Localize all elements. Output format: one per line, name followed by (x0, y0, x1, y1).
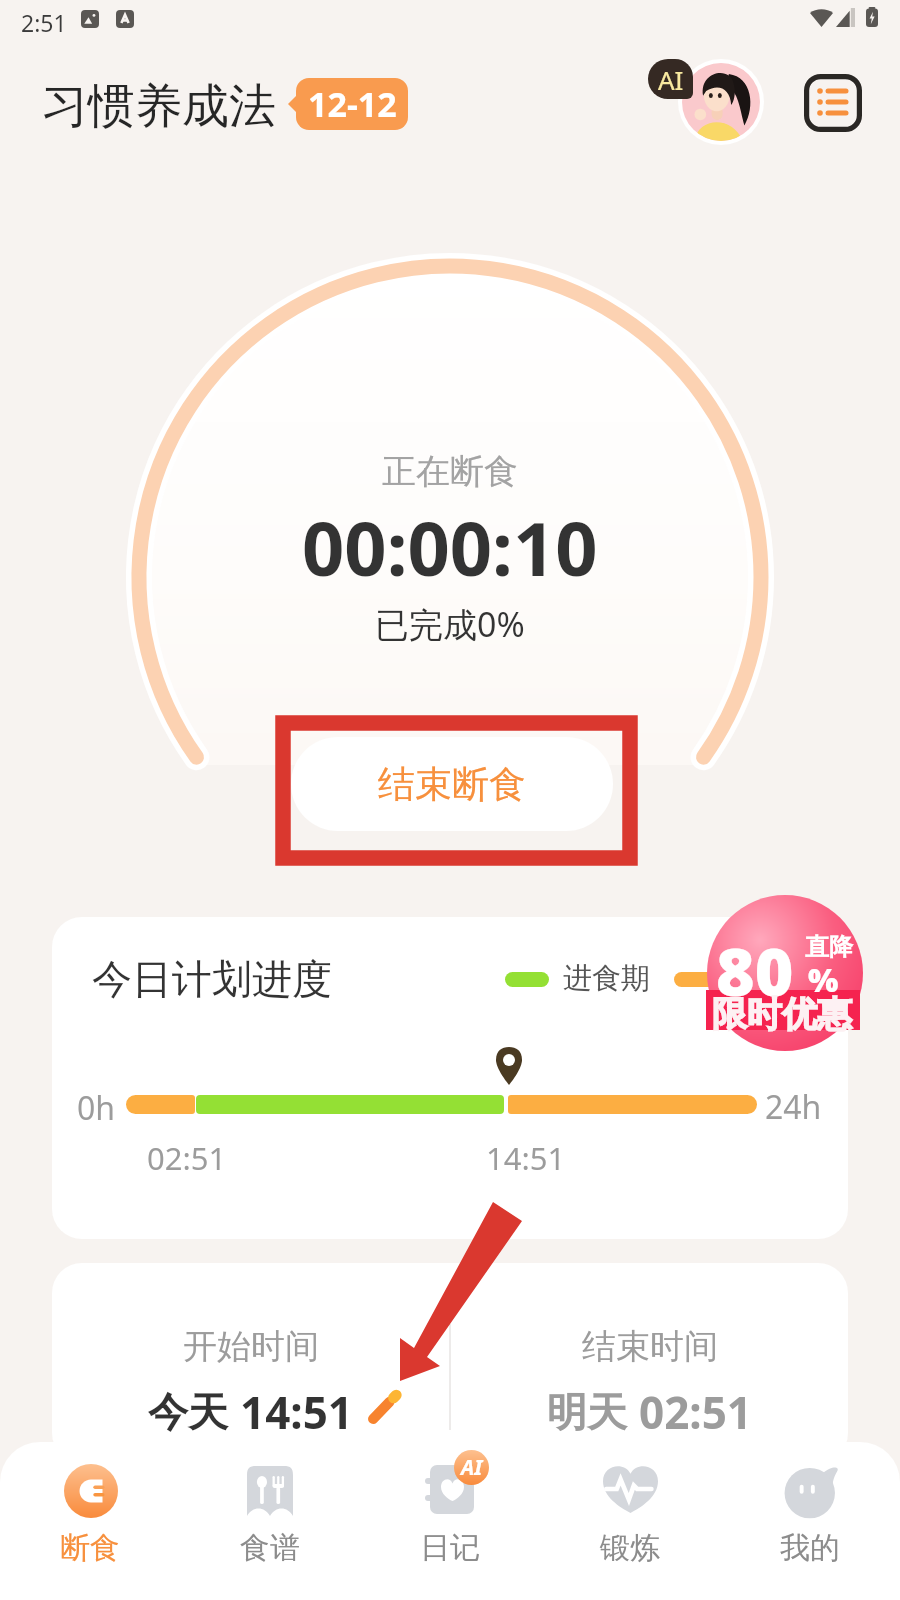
staticText: 0h (77, 1086, 116, 1130)
staticText: 习惯养成法 (41, 77, 276, 136)
staticText: 我的 (780, 1529, 840, 1567)
staticText: 14:51 (486, 1137, 566, 1179)
button[interactable]: Profile (682, 63, 760, 141)
staticText: 已完成0% (375, 601, 525, 647)
button[interactable]: 食谱 (180, 1442, 360, 1600)
staticText: 02:51 (639, 1382, 753, 1442)
staticText: 结束时间 (582, 1325, 718, 1368)
staticText: 今日计划进度 (92, 954, 332, 1004)
staticText: 进食期 (563, 960, 650, 997)
staticText: 直降 (805, 932, 853, 962)
button[interactable]: 结束时间 (451, 1263, 848, 1463)
staticText: 今天 (148, 1387, 228, 1437)
staticText: 02:51 (147, 1137, 227, 1179)
staticText: 断食 (60, 1529, 120, 1567)
button[interactable]: 断食 (0, 1442, 180, 1600)
staticText: 锻炼 (600, 1529, 660, 1567)
button[interactable]: 开始时间 (52, 1263, 449, 1463)
staticText: 食谱 (240, 1529, 300, 1567)
button[interactable]: 我的 (720, 1442, 900, 1600)
staticText: AI (658, 62, 684, 97)
staticText: 明天 (547, 1387, 627, 1437)
staticText: 80 (716, 925, 794, 1015)
staticText: 14:51 (240, 1382, 354, 1442)
staticText: 12-12 (308, 81, 397, 127)
button[interactable]: Records list (798, 68, 867, 137)
staticText: 2:51 (21, 7, 67, 38)
staticText: 结束断食 (378, 761, 526, 808)
button[interactable]: AI (360, 1442, 540, 1600)
staticText: 24h (765, 1085, 822, 1129)
staticText: 正在断食 (382, 450, 518, 493)
staticText: AI (461, 1453, 483, 1482)
staticText: 开始时间 (183, 1325, 319, 1368)
staticText: % (808, 958, 839, 1002)
staticText: 00:00:10 (302, 497, 598, 598)
staticText: 限时优惠 (712, 992, 852, 1036)
button[interactable]: 锻炼 (540, 1442, 720, 1600)
staticText: 日记 (420, 1529, 480, 1567)
button[interactable]: 结束断食 (291, 737, 613, 831)
